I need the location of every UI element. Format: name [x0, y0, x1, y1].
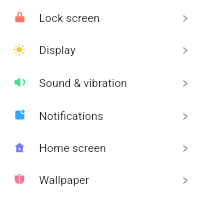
staticText: Wallpaper: [39, 174, 90, 187]
staticText: Sound & vibration: [39, 77, 128, 90]
button[interactable]: Display: [0, 34, 200, 66]
button[interactable]: Sound & vibration: [0, 67, 200, 99]
button[interactable]: Lock screen: [0, 2, 200, 34]
button[interactable]: Home screen: [0, 132, 200, 164]
staticText: Lock screen: [39, 12, 100, 25]
button[interactable]: Notifications: [0, 100, 200, 132]
button[interactable]: Wallpaper: [0, 164, 200, 196]
staticText: Notifications: [39, 110, 104, 123]
staticText: Display: [39, 44, 76, 57]
staticText: Home screen: [39, 142, 106, 155]
